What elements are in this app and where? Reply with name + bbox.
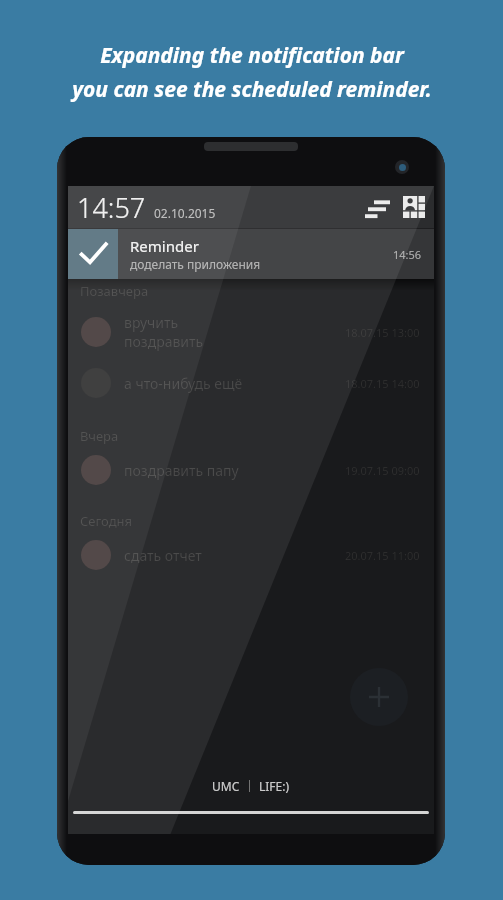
staticText: поздравить папу [124, 461, 239, 480]
button[interactable]: Reminder [68, 229, 434, 279]
button[interactable]: сдать отчет [68, 533, 434, 577]
staticText: доделать приложения [130, 256, 261, 272]
staticText: 02.10.2015 [154, 205, 216, 221]
staticText: 14:56 [393, 247, 422, 262]
button[interactable]: Close notification shade [73, 811, 429, 814]
staticText: you can see the scheduled reminder. [72, 75, 432, 104]
button[interactable]: а что-нибудь ещё [68, 361, 434, 405]
button[interactable]: поздравить папу [68, 448, 434, 492]
button[interactable]: вручить [68, 303, 434, 361]
staticText: 18.07.15 13:00 [345, 325, 420, 340]
button[interactable]: Add reminder [350, 668, 408, 726]
staticText: вручить [124, 313, 179, 332]
staticText: Сегодня [80, 512, 133, 530]
staticText: UMC [212, 778, 240, 794]
button[interactable]: Quick settings [365, 197, 390, 218]
staticText: сдать отчет [124, 546, 202, 565]
staticText: 19.07.15 09:00 [345, 463, 420, 478]
staticText: Позавчера [80, 282, 149, 300]
staticText: LIFE:) [259, 778, 290, 794]
staticText: а что-нибудь ещё [124, 374, 243, 393]
staticText: поздравить [124, 332, 204, 351]
staticText: Вчера [80, 427, 119, 445]
staticText: 20.07.15 11:00 [345, 548, 420, 563]
button[interactable]: User profile [403, 196, 425, 218]
staticText: Expanding the notification bar [100, 41, 404, 70]
staticText: 14:57 [77, 189, 146, 226]
staticText: Reminder [130, 236, 199, 256]
staticText: 18.07.15 14:00 [345, 376, 420, 391]
